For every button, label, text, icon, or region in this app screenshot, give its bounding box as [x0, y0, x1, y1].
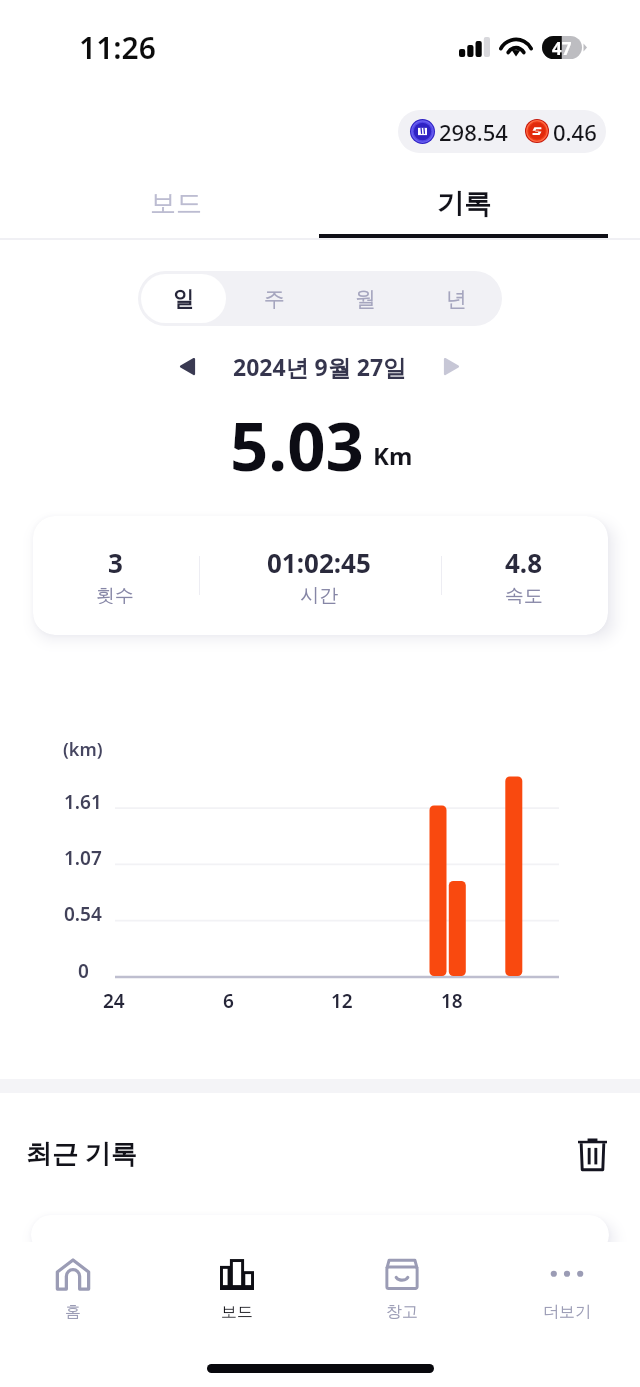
button[interactable]: 01:02:45: [229, 526, 409, 626]
button[interactable]: 3: [25, 526, 205, 626]
staticText: 시간: [300, 584, 338, 608]
staticText: (km): [63, 737, 103, 762]
staticText: 298.54: [439, 117, 508, 147]
button[interactable]: 창고: [354, 1248, 450, 1332]
staticText: 횟수: [96, 584, 134, 608]
button[interactable]: Delete records: [568, 1130, 616, 1178]
staticText: 보드: [221, 1302, 253, 1322]
staticText: Km: [373, 439, 413, 472]
staticText: 더보기: [543, 1302, 591, 1322]
staticText: 최근 기록: [26, 1135, 137, 1171]
staticText: 12: [331, 988, 353, 1014]
button[interactable]: Previous day: [167, 346, 207, 386]
staticText: 년: [446, 286, 467, 312]
staticText: 6: [223, 988, 234, 1014]
staticText: 1.61: [64, 789, 102, 815]
staticText: 기록: [437, 187, 491, 221]
staticText: 4.8: [505, 545, 543, 580]
button[interactable]: 보드: [0, 160, 320, 236]
button[interactable]: 주: [229, 271, 320, 326]
staticText: 2024년 9월 27일: [233, 351, 407, 382]
staticText: 0.54: [64, 901, 102, 927]
staticText: 주: [264, 286, 285, 312]
staticText: 창고: [386, 1302, 418, 1322]
button[interactable]: 홈: [25, 1248, 121, 1332]
staticText: 1.07: [64, 845, 102, 871]
button[interactable]: 4.8: [434, 526, 614, 626]
button[interactable]: 일: [141, 274, 226, 323]
staticText: 5.03: [230, 399, 364, 490]
staticText: 3: [108, 545, 123, 580]
staticText: 18: [441, 988, 463, 1014]
staticText: 0: [78, 958, 89, 984]
button[interactable]: 298.54: [398, 110, 606, 153]
staticText: 11:26: [79, 27, 156, 68]
button[interactable]: Next day: [431, 346, 471, 386]
staticText: 월: [355, 286, 376, 312]
staticText: 일: [173, 286, 194, 312]
staticText: 보드: [150, 187, 202, 220]
staticText: 0.46: [553, 117, 597, 147]
button[interactable]: 기록: [320, 160, 640, 236]
button[interactable]: 월: [320, 271, 411, 326]
button[interactable]: 더보기: [519, 1248, 615, 1332]
staticText: 속도: [505, 584, 543, 608]
button[interactable]: 보드: [189, 1248, 285, 1332]
staticText: 홈: [65, 1302, 81, 1322]
staticText: 24: [103, 988, 125, 1014]
button[interactable]: 년: [411, 271, 502, 326]
staticText: 01:02:45: [267, 545, 371, 580]
staticText: 47: [552, 37, 572, 60]
